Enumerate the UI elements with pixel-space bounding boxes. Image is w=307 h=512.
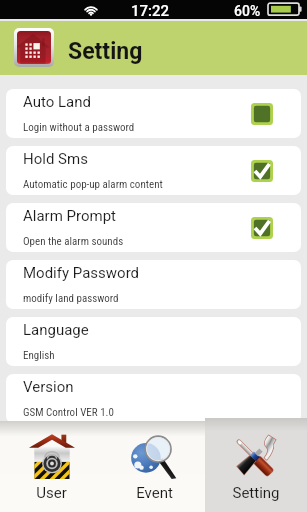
button[interactable]: App icon <box>17 31 51 64</box>
staticText: User <box>36 484 67 502</box>
button[interactable]: Alarm Prompt <box>6 203 301 252</box>
staticText: English <box>23 349 55 362</box>
button[interactable]: Event <box>103 421 205 512</box>
staticText: Open the alarm sounds <box>23 235 124 248</box>
staticText: Setting <box>232 484 280 502</box>
button[interactable]: Enabled, checked <box>251 217 273 239</box>
staticText: Setting <box>68 38 143 65</box>
staticText: Event <box>136 484 173 502</box>
staticText: 60% <box>234 3 261 19</box>
staticText: Auto Land <box>23 93 91 111</box>
staticText: Hold Sms <box>23 150 88 168</box>
staticText: modify land password <box>23 292 119 305</box>
button[interactable]: Setting <box>205 418 307 512</box>
staticText: 17:22 <box>131 2 170 20</box>
button[interactable]: Version <box>6 374 301 423</box>
staticText: Language <box>23 321 89 339</box>
staticText: Alarm Prompt <box>23 207 116 225</box>
button[interactable]: Modify Password <box>6 260 301 309</box>
button[interactable]: Language <box>6 317 301 366</box>
staticText: GSM Control VER 1.0 <box>23 406 114 419</box>
staticText: Login without a password <box>23 121 135 134</box>
button[interactable]: Enabled, checked <box>251 160 273 182</box>
button[interactable]: Disabled, unchecked <box>251 103 273 125</box>
button[interactable]: User <box>0 421 103 512</box>
button[interactable]: Hold Sms <box>6 146 301 195</box>
staticText: Version <box>23 378 74 396</box>
staticText: Modify Password <box>23 264 140 282</box>
button[interactable]: Auto Land <box>6 89 301 138</box>
staticText: Automatic pop-up alarm content <box>23 178 163 191</box>
